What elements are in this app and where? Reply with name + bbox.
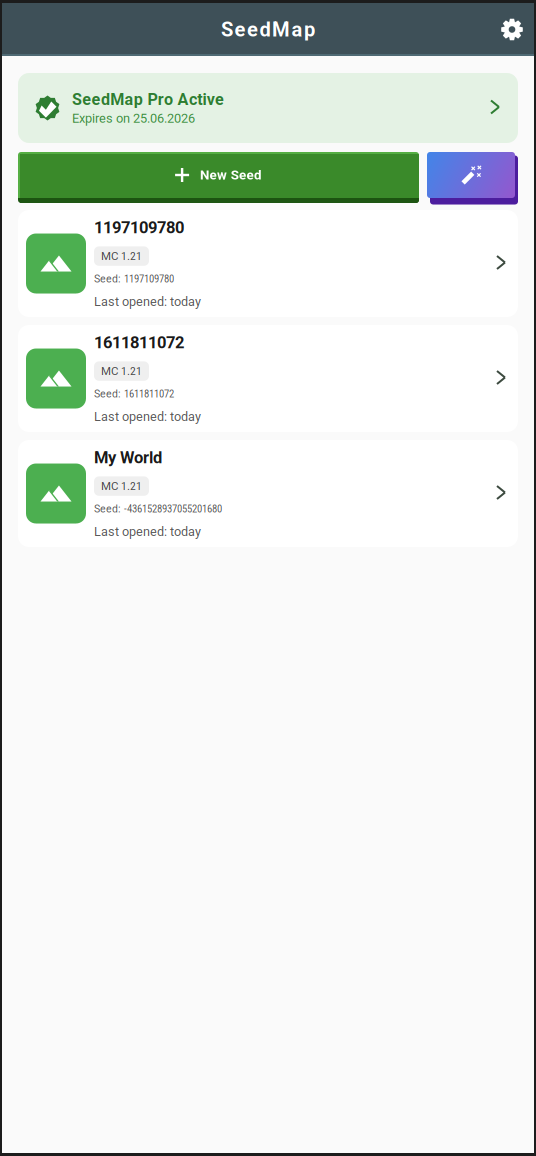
staticText: Seed: bbox=[94, 388, 124, 400]
staticText: New Seed bbox=[200, 167, 262, 183]
staticText: Expires on 25.06.2026 bbox=[72, 111, 195, 126]
staticText: 1.21 bbox=[121, 249, 142, 263]
staticText: 1.21 bbox=[121, 479, 142, 493]
staticText: 1197109780 bbox=[94, 218, 184, 237]
staticText: My World bbox=[94, 448, 162, 467]
button[interactable]: My World bbox=[18, 440, 518, 547]
staticText: 1611811072 bbox=[94, 333, 184, 352]
button[interactable]: Settings bbox=[490, 3, 534, 56]
staticText: Last opened: today bbox=[94, 409, 201, 424]
staticText: MC bbox=[101, 479, 121, 493]
staticText: 1197109780 bbox=[124, 273, 174, 285]
staticText: -4361528937055201680 bbox=[124, 503, 222, 515]
staticText: Seed: bbox=[94, 273, 124, 285]
staticText: SeedMap Pro Active bbox=[72, 90, 224, 109]
staticText: 1.21 bbox=[121, 364, 142, 378]
staticText: Seed: bbox=[94, 503, 124, 515]
button[interactable]: Generate random seed bbox=[427, 152, 518, 203]
button[interactable]: New Seed bbox=[18, 152, 419, 203]
button[interactable]: 1611811072 bbox=[18, 325, 518, 432]
button[interactable]: 1197109780 bbox=[18, 210, 518, 317]
staticText: MC bbox=[101, 249, 121, 263]
staticText: Last opened: today bbox=[94, 294, 201, 309]
staticText: MC bbox=[101, 364, 121, 378]
button[interactable]: SeedMap Pro Active bbox=[18, 73, 518, 143]
staticText: SeedMap bbox=[221, 18, 315, 41]
staticText: Last opened: today bbox=[94, 524, 201, 539]
staticText: 1611811072 bbox=[124, 388, 174, 400]
